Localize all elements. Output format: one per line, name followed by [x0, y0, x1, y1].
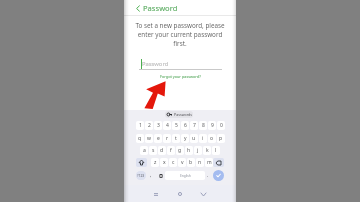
button[interactable]: Emoji: [157, 171, 165, 180]
button[interactable]: Space: [165, 171, 205, 180]
staticText: t: [175, 135, 177, 142]
button[interactable]: l: [212, 146, 220, 155]
staticText: g: [178, 147, 182, 154]
staticText: l: [215, 147, 217, 154]
button[interactable]: f: [167, 146, 175, 155]
button[interactable]: 6: [181, 121, 189, 130]
button[interactable]: 1: [136, 121, 144, 130]
staticText: 8: [202, 122, 205, 129]
staticText: y: [184, 135, 187, 142]
staticText: Forgot your password?: [160, 74, 201, 79]
staticText: .: [207, 172, 209, 179]
button[interactable]: 2: [145, 121, 153, 130]
button[interactable]: u: [190, 134, 198, 143]
button[interactable]: j: [194, 146, 202, 155]
button[interactable]: Backspace: [213, 158, 224, 167]
staticText: Passwords: [174, 112, 192, 117]
button[interactable]: Passwords: [165, 111, 193, 118]
staticText: a: [143, 147, 146, 154]
staticText: 2: [148, 122, 151, 129]
button[interactable]: p: [217, 134, 225, 143]
button[interactable]: r: [163, 134, 171, 143]
other: Passwords: [167, 113, 172, 116]
button[interactable]: t: [172, 134, 180, 143]
staticText: q: [138, 135, 142, 142]
button[interactable]: Shift: [136, 158, 147, 167]
staticText: h: [187, 147, 191, 154]
button[interactable]: q: [136, 134, 144, 143]
staticText: c: [172, 159, 175, 166]
button[interactable]: .: [204, 171, 211, 180]
staticText: 5: [175, 122, 178, 129]
staticText: e: [157, 135, 160, 142]
button[interactable]: x: [160, 158, 168, 167]
staticText: ?123: [137, 173, 145, 178]
staticText: 7: [193, 122, 196, 129]
staticText: o: [210, 135, 214, 142]
staticText: p: [219, 135, 223, 142]
button[interactable]: Done: [213, 170, 224, 181]
button[interactable]: v: [178, 158, 186, 167]
staticText: s: [152, 147, 155, 154]
staticText: To set a new password, please enter your…: [134, 21, 226, 48]
button[interactable]: a: [140, 146, 148, 155]
button[interactable]: i: [199, 134, 207, 143]
staticText: 1: [139, 122, 142, 129]
staticText: b: [189, 159, 193, 166]
staticText: k: [206, 147, 209, 154]
staticText: r: [166, 135, 169, 142]
button[interactable]: n: [196, 158, 204, 167]
button[interactable]: c: [169, 158, 177, 167]
button[interactable]: s: [149, 146, 157, 155]
button[interactable]: Forgot your password?: [160, 74, 201, 79]
button[interactable]: ,: [147, 171, 154, 180]
staticText: m: [207, 159, 212, 166]
button[interactable]: m: [205, 158, 213, 167]
button[interactable]: 5: [172, 121, 180, 130]
staticText: w: [147, 135, 151, 142]
button[interactable]: g: [176, 146, 184, 155]
button[interactable]: 3: [154, 121, 162, 130]
button[interactable]: y: [181, 134, 189, 143]
staticText: d: [160, 147, 164, 154]
button[interactable]: 8: [199, 121, 207, 130]
button[interactable]: Home: [174, 188, 186, 200]
staticText: i: [202, 135, 204, 142]
button[interactable]: 0: [217, 121, 225, 130]
button[interactable]: 7: [190, 121, 198, 130]
staticText: English: [180, 174, 191, 178]
staticText: 0: [220, 122, 223, 129]
staticText: v: [181, 159, 184, 166]
staticText: 6: [184, 122, 187, 129]
staticText: ,: [150, 172, 152, 179]
button[interactable]: b: [187, 158, 195, 167]
button[interactable]: d: [158, 146, 166, 155]
button[interactable]: Back: [197, 188, 209, 200]
button[interactable]: Recents: [150, 188, 162, 200]
staticText: 9: [211, 122, 214, 129]
button[interactable]: Password: [142, 60, 169, 68]
staticText: Password: [143, 3, 178, 13]
staticText: u: [192, 135, 196, 142]
staticText: x: [163, 159, 166, 166]
button[interactable]: k: [203, 146, 211, 155]
button[interactable]: z: [151, 158, 159, 167]
staticText: n: [198, 159, 202, 166]
button[interactable]: e: [154, 134, 162, 143]
button[interactable]: Back: [136, 2, 178, 14]
button[interactable]: ?123: [136, 171, 146, 180]
staticText: f: [170, 147, 172, 154]
button[interactable]: h: [185, 146, 193, 155]
button[interactable]: 4: [163, 121, 171, 130]
staticText: Password: [142, 60, 169, 68]
button[interactable]: w: [145, 134, 153, 143]
staticText: 3: [157, 122, 160, 129]
other: Back: [136, 5, 140, 12]
staticText: 4: [166, 122, 169, 129]
staticText: z: [154, 159, 157, 166]
button[interactable]: o: [208, 134, 216, 143]
staticText: j: [197, 147, 199, 154]
button[interactable]: 9: [208, 121, 216, 130]
